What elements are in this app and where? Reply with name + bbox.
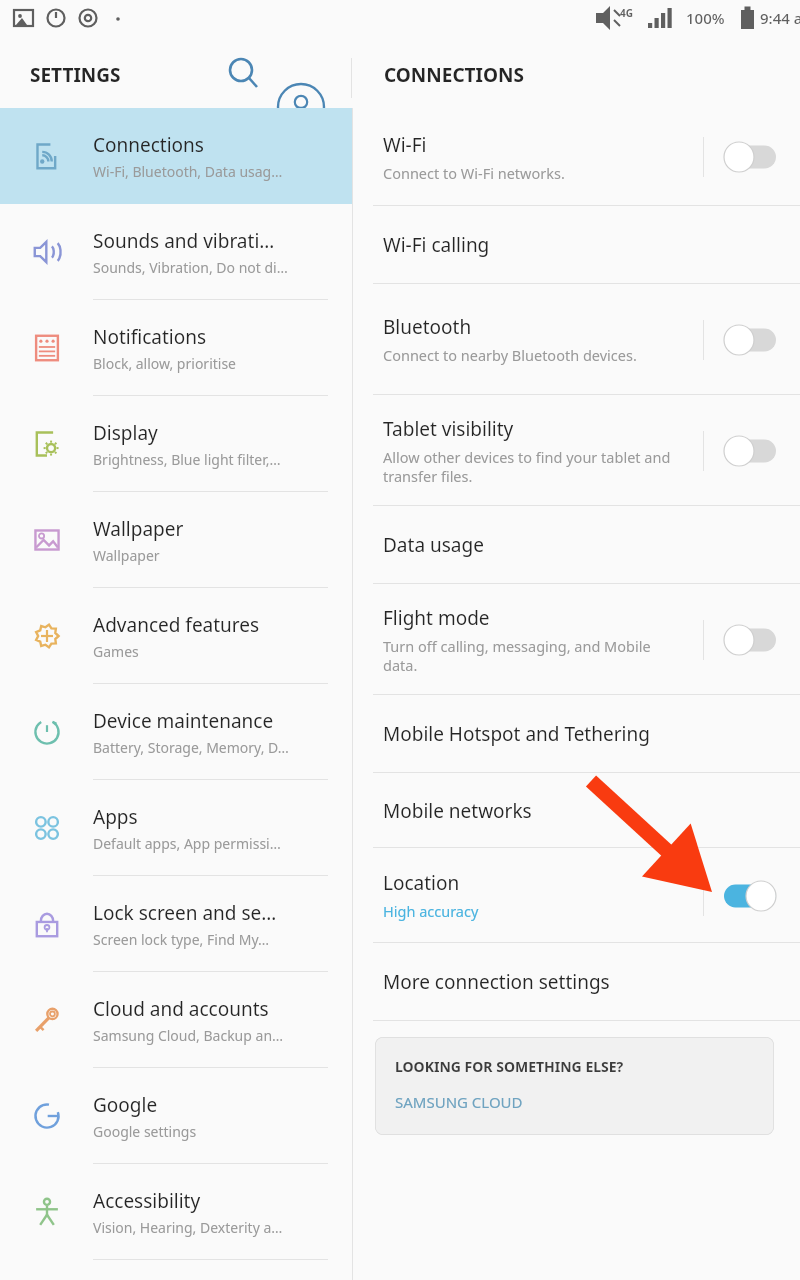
staticText: Wi-Fi, Bluetooth, Data usag…	[93, 162, 283, 181]
staticText: Connect to Wi-Fi networks.	[383, 163, 565, 183]
button[interactable]: Lock screen and se…	[0, 876, 352, 972]
staticText: Apps	[93, 804, 138, 830]
staticText: Block, allow, prioritise	[93, 354, 237, 373]
staticText: Advanced features	[93, 612, 260, 638]
staticText: Games	[93, 642, 139, 661]
button[interactable]: Wallpaper	[0, 492, 352, 588]
staticText: Allow other devices to find your tablet …	[383, 447, 685, 486]
staticText: Google settings	[93, 1122, 197, 1141]
staticText: Notifications	[93, 324, 207, 350]
staticText: Connect to nearby Bluetooth devices.	[383, 345, 637, 365]
button[interactable]: Sounds and vibrati…	[0, 204, 352, 300]
staticText: Turn off calling, messaging, and Mobile …	[383, 636, 685, 675]
button[interactable]: Mobile Hotspot and Tethering	[353, 695, 800, 773]
staticText: Flight mode	[383, 605, 490, 631]
button[interactable]: Location toggle	[724, 881, 776, 911]
staticText: Display	[93, 420, 158, 446]
button[interactable]: Wi-Fi toggle	[724, 142, 776, 172]
button[interactable]: Connections	[0, 108, 352, 204]
staticText: CONNECTIONS	[384, 62, 524, 88]
staticText: Wallpaper	[93, 516, 184, 542]
staticText: SETTINGS	[30, 62, 121, 88]
staticText: SAMSUNG CLOUD	[395, 1092, 523, 1112]
staticText: Wi-Fi calling	[383, 232, 490, 258]
button[interactable]: Google	[0, 1068, 352, 1164]
staticText: More connection settings	[383, 969, 610, 995]
button[interactable]: Flight mode	[353, 584, 800, 695]
staticText: 9:44 am	[760, 8, 800, 28]
button[interactable]: Device maintenance	[0, 684, 352, 780]
staticText: Bluetooth	[383, 314, 472, 340]
staticText: Sounds and vibrati…	[93, 228, 275, 254]
button[interactable]: More connection settings	[353, 943, 800, 1021]
staticText: Google	[93, 1092, 158, 1118]
button[interactable]: Tablet visibility	[353, 395, 800, 506]
staticText: Cloud and accounts	[93, 996, 269, 1022]
staticText: Data usage	[383, 532, 484, 558]
button[interactable]: Tablet visibility toggle	[724, 436, 776, 466]
staticText: Device maintenance	[93, 708, 274, 734]
button[interactable]: Flight mode toggle	[724, 625, 776, 655]
button[interactable]: Display	[0, 396, 352, 492]
staticText: Samsung Cloud, Backup an…	[93, 1026, 284, 1045]
button[interactable]: Advanced features	[0, 588, 352, 684]
button[interactable]: LOOKING FOR SOMETHING ELSE?	[375, 1037, 774, 1135]
staticText: Sounds, Vibration, Do not di…	[93, 258, 288, 277]
staticText: LOOKING FOR SOMETHING ELSE?	[395, 1057, 624, 1076]
staticText: Screen lock type, Find My…	[93, 930, 270, 949]
staticText: Default apps, App permissi…	[93, 834, 281, 853]
staticText: High accuracy	[383, 901, 479, 921]
button[interactable]: Location	[353, 848, 800, 943]
button[interactable]: Mobile networks	[353, 773, 800, 848]
button[interactable]: Notifications	[0, 300, 352, 396]
staticText: 100%	[686, 8, 725, 28]
staticText: Brightness, Blue light filter,…	[93, 450, 281, 469]
button[interactable]: Search	[222, 52, 264, 94]
staticText: Battery, Storage, Memory, D…	[93, 738, 289, 757]
staticText: Wi-Fi	[383, 132, 427, 158]
button[interactable]: Wi-Fi	[353, 108, 800, 206]
staticText: Mobile Hotspot and Tethering	[383, 721, 650, 747]
button[interactable]: Bluetooth	[353, 284, 800, 395]
staticText: Lock screen and se…	[93, 900, 277, 926]
button[interactable]: Cloud and accounts	[0, 972, 352, 1068]
staticText: Tablet visibility	[383, 416, 514, 442]
button[interactable]: Bluetooth toggle	[724, 325, 776, 355]
button[interactable]: Wi-Fi calling	[353, 206, 800, 284]
button[interactable]: Apps	[0, 780, 352, 876]
button[interactable]: Account	[276, 82, 326, 132]
button[interactable]: Accessibility	[0, 1164, 352, 1260]
staticText: Accessibility	[93, 1188, 201, 1214]
staticText: Wallpaper	[93, 546, 160, 565]
staticText: Mobile networks	[383, 798, 532, 824]
staticText: 4G	[620, 6, 633, 20]
staticText: Location	[383, 870, 460, 896]
staticText: Connections	[93, 132, 204, 158]
staticText: Vision, Hearing, Dexterity a…	[93, 1218, 283, 1237]
button[interactable]: Data usage	[353, 506, 800, 584]
